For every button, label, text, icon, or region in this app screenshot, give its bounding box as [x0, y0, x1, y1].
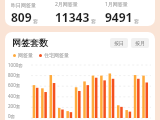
staticText: 800套 [8, 72, 21, 78]
staticText: 套 [33, 18, 38, 24]
button[interactable]: 按月 [131, 38, 149, 48]
staticText: 600套 [8, 82, 21, 88]
staticText: 1000套 [8, 62, 23, 68]
staticText: 9491 [105, 9, 133, 25]
staticText: 1月网签量 [105, 1, 128, 8]
staticText: 809 [11, 9, 32, 25]
button[interactable]: 按日 [110, 38, 128, 48]
button[interactable]: 昨日网签量 [5, 0, 155, 26]
staticText: 昨日网签量 [11, 2, 36, 8]
staticText: 2月网签量 [55, 1, 78, 8]
staticText: 按月 [135, 40, 145, 46]
staticText: 按日 [114, 40, 124, 46]
staticText: 400套 [8, 93, 21, 99]
staticText: 住宅网签量 [44, 52, 69, 58]
staticText: 网签量 [18, 52, 33, 58]
staticText: 200套 [8, 103, 21, 109]
staticText: 套 [134, 18, 139, 24]
staticText: 11343 [55, 9, 90, 25]
staticText: 0套 [8, 113, 16, 119]
staticText: 网签套数 [12, 37, 48, 48]
staticText: 套 [91, 18, 96, 24]
